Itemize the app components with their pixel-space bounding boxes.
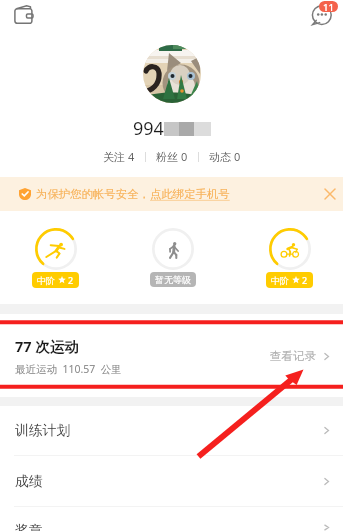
- staticText: 0: [234, 149, 241, 164]
- staticText: 奖章: [15, 522, 43, 531]
- button[interactable]: 点此绑定手机号: [150, 187, 230, 201]
- button[interactable]: 关注: [101, 149, 137, 164]
- staticText: 为保护您的帐号安全，: [36, 187, 150, 201]
- staticText: 4: [128, 149, 135, 164]
- button[interactable]: 77 次运动: [0, 314, 343, 397]
- staticText: 最近运动 110.57 公里: [15, 362, 122, 376]
- staticText: 2: [68, 274, 74, 286]
- staticText: 77 次运动: [15, 336, 79, 356]
- button[interactable]: 中阶: [266, 228, 313, 288]
- staticText: 11: [323, 1, 334, 12]
- staticText: 成绩: [15, 473, 43, 490]
- staticText: 暂无等级: [155, 274, 191, 285]
- staticText: 粉丝: [156, 150, 178, 164]
- button[interactable]: 训练计划: [0, 406, 343, 455]
- button[interactable]: Messages: [305, 0, 338, 27]
- staticText: 关注: [103, 150, 125, 164]
- staticText: 动态: [209, 150, 231, 164]
- staticText: 994: [133, 116, 164, 141]
- staticText: 查看记录: [270, 349, 316, 363]
- button[interactable]: 成绩: [0, 456, 343, 506]
- button[interactable]: Wallet: [11, 5, 34, 26]
- staticText: 中阶: [271, 275, 289, 286]
- button[interactable]: Close: [319, 183, 341, 205]
- button[interactable]: 粉丝: [154, 149, 190, 164]
- staticText: 2: [302, 274, 308, 286]
- button[interactable]: 暂无等级: [150, 228, 196, 287]
- button[interactable]: 动态: [207, 149, 243, 164]
- button[interactable]: 奖章: [0, 507, 343, 531]
- staticText: 中阶: [37, 275, 55, 286]
- staticText: 0: [181, 149, 188, 164]
- button[interactable]: 为保护您的帐号安全，: [0, 177, 343, 211]
- staticText: 训练计划: [15, 422, 71, 439]
- button[interactable]: 中阶: [32, 228, 79, 288]
